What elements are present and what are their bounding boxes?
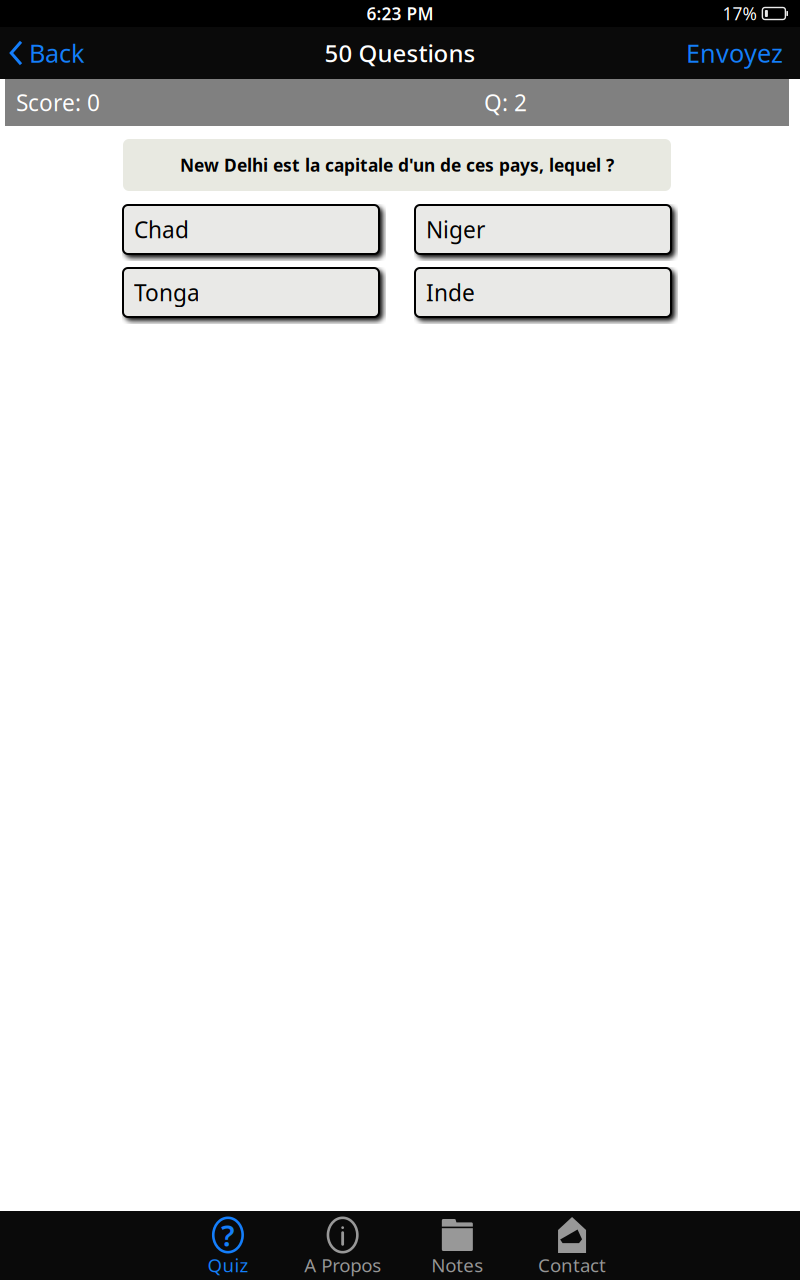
staticText: Contact	[538, 1253, 606, 1277]
button[interactable]: A Propos	[285, 1211, 400, 1280]
staticText: Envoyez	[686, 36, 783, 70]
staticText: Notes	[431, 1253, 483, 1277]
staticText: A Propos	[304, 1253, 381, 1277]
staticText: ?	[221, 1215, 235, 1254]
button[interactable]: Niger	[415, 205, 671, 254]
button[interactable]: Tonga	[123, 268, 379, 317]
staticText: Score: 0	[16, 87, 100, 117]
staticText: 6:23 PM	[366, 2, 433, 25]
staticText: 17%	[722, 2, 756, 25]
button[interactable]: Back	[0, 28, 85, 78]
button[interactable]: Notes	[400, 1211, 515, 1280]
staticText: Inde	[426, 277, 475, 307]
staticText: Quiz	[207, 1253, 248, 1277]
button[interactable]: Chad	[123, 205, 379, 254]
staticText: 50 Questions	[324, 37, 475, 69]
staticText: Q: 2	[484, 87, 527, 117]
button[interactable]: Inde	[415, 268, 671, 317]
button[interactable]: ?	[171, 1211, 285, 1280]
button[interactable]: Contact	[515, 1211, 629, 1280]
staticText: Tonga	[134, 277, 200, 307]
staticText: Niger	[426, 214, 485, 244]
staticText: Back	[29, 36, 85, 70]
staticText: Chad	[134, 214, 189, 244]
staticText: New Delhi est la capitale d'un de ces pa…	[180, 153, 614, 176]
button[interactable]: Envoyez	[686, 28, 800, 78]
